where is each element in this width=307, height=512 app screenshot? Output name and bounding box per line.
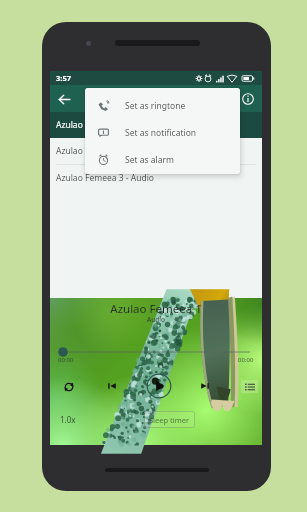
button[interactable]: Back — [52, 87, 76, 111]
button[interactable]: Play — [145, 372, 173, 400]
button[interactable]: Azulao Femeea 3 - Audio — [50, 165, 262, 191]
staticText: Azulao Femeea 1 — [50, 301, 262, 317]
button[interactable]: Next — [195, 376, 215, 396]
staticText: 00:00 — [58, 356, 74, 364]
button[interactable]: 1.0x — [57, 412, 79, 427]
button[interactable]: Sleep timer — [144, 411, 195, 428]
staticText: Sleep timer — [149, 415, 190, 425]
button[interactable]: Previous — [102, 376, 122, 396]
button[interactable]: Azulao Femeea 1 - Audio — [50, 112, 262, 138]
button[interactable]: Info — [236, 87, 260, 111]
button[interactable]: Azulao Femeea 2 - Audio — [50, 138, 262, 164]
button[interactable]: Repeat — [58, 376, 79, 397]
staticText: Audio — [50, 315, 262, 324]
button[interactable]: Set as ringtone — [85, 92, 240, 119]
staticText: 3:57 — [56, 73, 71, 83]
button[interactable]: Set as notification — [85, 119, 240, 146]
staticText: 00:00 — [238, 356, 254, 364]
button[interactable]: Playlist — [239, 376, 259, 396]
staticText: Set as notification — [125, 127, 197, 139]
staticText: Azulao Femeea 3 - Audio — [56, 172, 154, 184]
staticText: Set as alarm — [125, 154, 174, 166]
button[interactable]: Set as alarm — [85, 146, 240, 173]
staticText: Set as ringtone — [125, 100, 186, 112]
staticText: 1.0x — [60, 414, 76, 425]
staticText: Azulao Femeea 1 - Audio — [56, 119, 154, 131]
staticText: Azulao Femeea 2 - Audio — [56, 145, 154, 157]
